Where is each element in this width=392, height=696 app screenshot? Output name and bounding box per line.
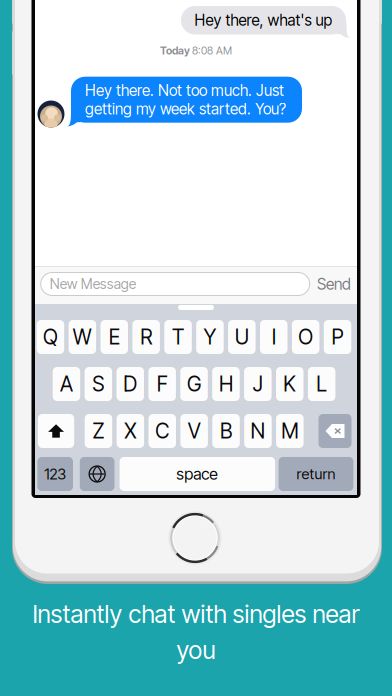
staticText: J [253,371,263,396]
button[interactable]: W [69,320,96,354]
staticText: B [220,418,232,443]
staticText: Hey there. Not too much. Just getting my… [85,81,286,118]
staticText: Hey there, what's up [194,11,332,30]
staticText: P [331,324,343,349]
staticText: you [176,635,215,665]
staticText: R [140,324,152,349]
button[interactable]: K [276,367,303,401]
button[interactable]: Y [196,320,224,354]
staticText: return [296,465,335,483]
staticText: U [235,324,249,349]
staticText: S [92,371,104,396]
button[interactable]: D [116,367,144,401]
button[interactable]: G [180,367,208,401]
staticText: C [155,418,169,443]
button[interactable]: F [148,367,176,401]
staticText: Instantly chat with singles near [32,599,359,629]
staticText: Q [43,324,58,349]
staticText: New Message [50,275,136,292]
button[interactable]: I [260,320,287,354]
staticText: L [316,371,327,396]
button[interactable]: A [53,367,80,401]
button[interactable]: H [212,367,240,401]
staticText: 123 [44,465,66,483]
staticText: N [250,418,265,443]
button[interactable]: E [100,320,128,354]
button[interactable]: C [148,414,176,448]
button[interactable]: L [308,367,335,401]
button[interactable]: P [324,320,351,354]
staticText: W [73,324,92,349]
staticText: Z [92,418,104,443]
staticText: Y [203,324,216,349]
staticText: T [172,324,184,349]
button[interactable]: Delete [318,414,351,448]
staticText: Send [317,275,351,293]
staticText: G [187,371,201,396]
button[interactable]: J [244,367,272,401]
button[interactable]: B [212,414,240,448]
button[interactable]: Shift [38,414,74,448]
button[interactable]: T [164,320,192,354]
button[interactable]: 123 [37,457,73,491]
staticText: K [283,371,296,396]
button[interactable]: Send [317,275,351,293]
button[interactable]: X [117,414,144,448]
button[interactable]: Home [169,512,221,564]
staticText: Today 8:08 AM [160,44,232,57]
button[interactable]: Z [85,414,112,448]
button[interactable]: V [180,414,208,448]
staticText: V [188,418,201,443]
button[interactable]: R [132,320,160,354]
staticText: F [157,371,168,396]
staticText: I [272,324,276,349]
staticText: A [60,371,73,396]
staticText: space [176,464,218,484]
staticText: X [124,418,136,443]
button[interactable]: S [85,367,112,401]
button[interactable]: return [279,457,353,491]
staticText: M [281,418,298,443]
button[interactable]: M [276,414,304,448]
button[interactable]: U [228,320,256,354]
button[interactable]: Q [37,320,64,354]
button[interactable]: Change keyboard [80,457,114,491]
button[interactable]: O [292,320,319,354]
button[interactable]: New Message [41,272,310,295]
button[interactable]: space [120,457,275,491]
staticText: O [298,324,313,349]
staticText: E [109,324,120,349]
button[interactable]: N [244,414,272,448]
staticText: H [219,371,233,396]
staticText: D [123,371,137,396]
